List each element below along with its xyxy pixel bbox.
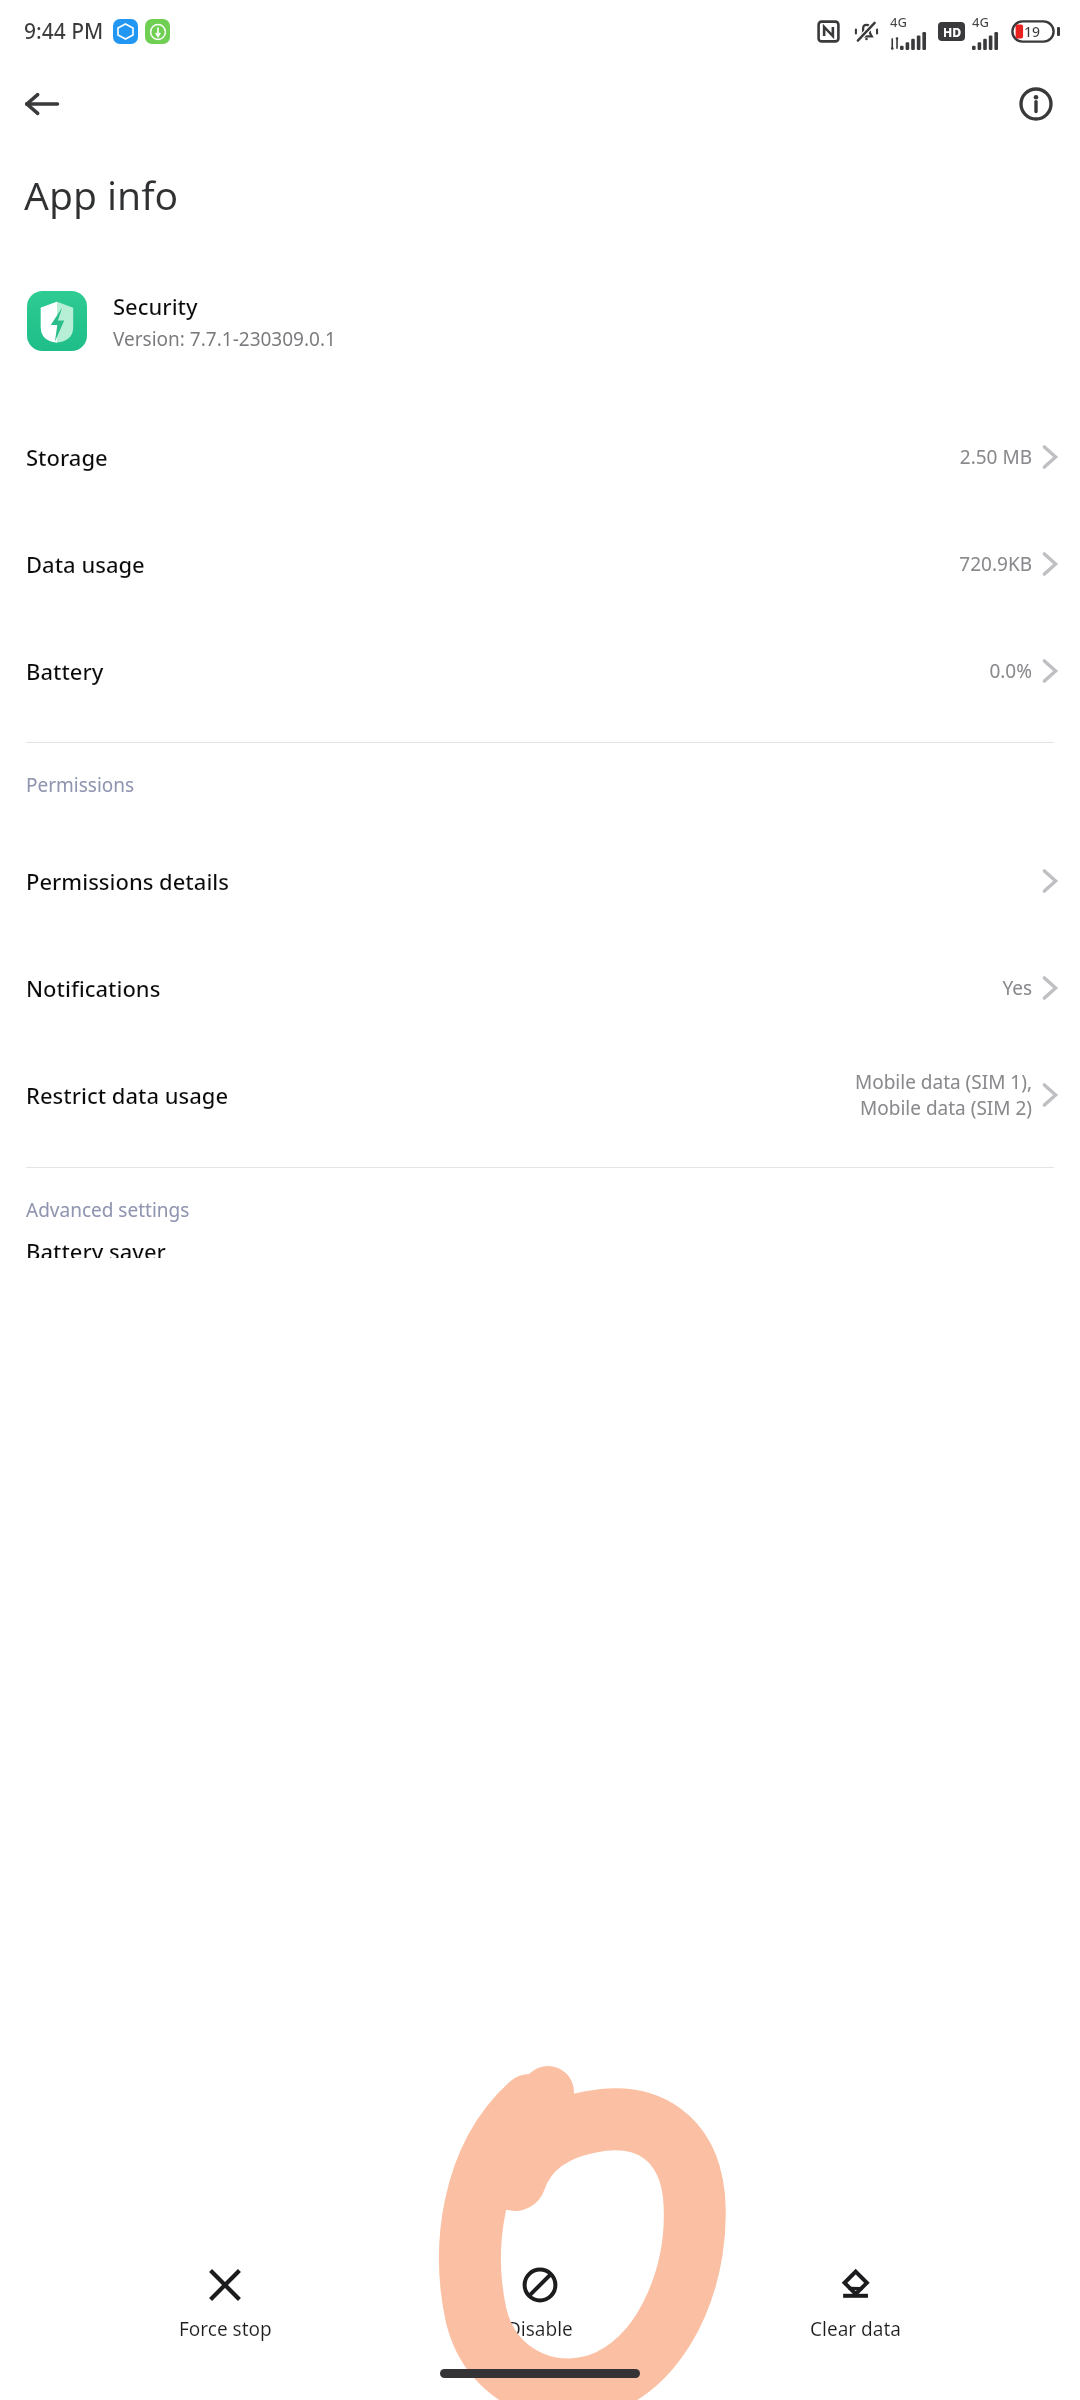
staticText: Permissions details — [26, 866, 229, 896]
staticText: Battery — [26, 656, 104, 686]
staticText: Version: 7.7.1-230309.0.1 — [113, 326, 336, 352]
other: Disable — [522, 2267, 558, 2303]
button[interactable]: Permissions details — [0, 827, 1080, 934]
staticText: 4G — [972, 13, 989, 31]
staticText: Data usage — [26, 549, 145, 579]
staticText: HD — [943, 24, 961, 40]
button[interactable]: Back — [14, 76, 70, 132]
button[interactable]: Disable — [450, 2260, 630, 2348]
staticText: App info — [24, 168, 179, 221]
button[interactable]: Notifications — [0, 934, 1080, 1041]
staticText: Security — [113, 291, 198, 321]
staticText: Permissions — [26, 772, 135, 798]
staticText: 720.9KB — [959, 551, 1032, 577]
staticText: Restrict data usage — [26, 1080, 229, 1110]
staticText: 19 — [1024, 22, 1041, 41]
button[interactable]: Battery saver — [0, 1252, 1080, 1274]
button[interactable]: Force stop — [135, 2260, 315, 2348]
staticText: 9:44 PM — [24, 17, 104, 46]
staticText: Battery saver — [26, 1236, 166, 1258]
button[interactable]: Clear data — [765, 2260, 945, 2348]
button[interactable]: Data usage — [0, 510, 1080, 617]
other: Clear data — [837, 2267, 873, 2303]
staticText: Disable — [507, 2316, 573, 2342]
staticText: Advanced settings — [26, 1197, 190, 1223]
staticText: Clear data — [810, 2316, 901, 2342]
staticText: Mobile data (SIM 1), Mobile data (SIM 2) — [854, 1069, 1032, 1121]
button[interactable]: Battery — [0, 617, 1080, 724]
staticText: 2.50 MB — [959, 444, 1032, 470]
staticText: Force stop — [179, 2316, 272, 2342]
button[interactable]: Storage — [0, 403, 1080, 510]
button[interactable]: App details — [1008, 76, 1064, 132]
other: Force stop — [207, 2267, 243, 2303]
button[interactable]: Restrict data usage — [0, 1041, 1080, 1149]
staticText: 0.0% — [989, 658, 1032, 684]
staticText: Yes — [1002, 975, 1032, 1001]
staticText: Notifications — [26, 973, 161, 1003]
staticText: Storage — [26, 442, 108, 472]
staticText: 4G — [890, 13, 907, 31]
